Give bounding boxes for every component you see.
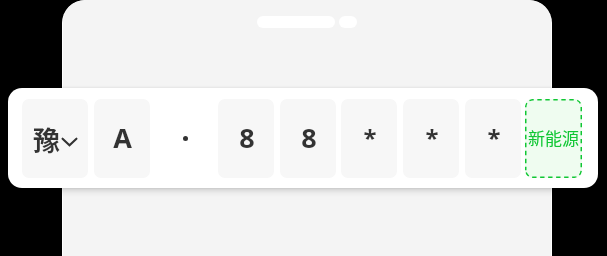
button[interactable]: * — [403, 99, 459, 178]
staticText: A — [113, 119, 132, 156]
button[interactable]: 8 — [280, 99, 336, 178]
staticText: 豫 — [33, 120, 60, 159]
button[interactable]: 豫 — [22, 99, 88, 178]
staticText: * — [487, 121, 501, 154]
staticText: 8 — [301, 119, 317, 156]
staticText: 新能源 — [528, 125, 579, 150]
other: Choose province — [61, 136, 78, 148]
button[interactable]: 8 — [218, 99, 274, 178]
button[interactable]: A — [94, 99, 150, 178]
staticText: * — [425, 121, 439, 154]
button[interactable]: * — [465, 99, 521, 178]
staticText: * — [363, 121, 377, 154]
staticText: 8 — [239, 119, 255, 156]
button[interactable]: * — [341, 99, 397, 178]
button[interactable]: 新能源 — [525, 99, 582, 178]
